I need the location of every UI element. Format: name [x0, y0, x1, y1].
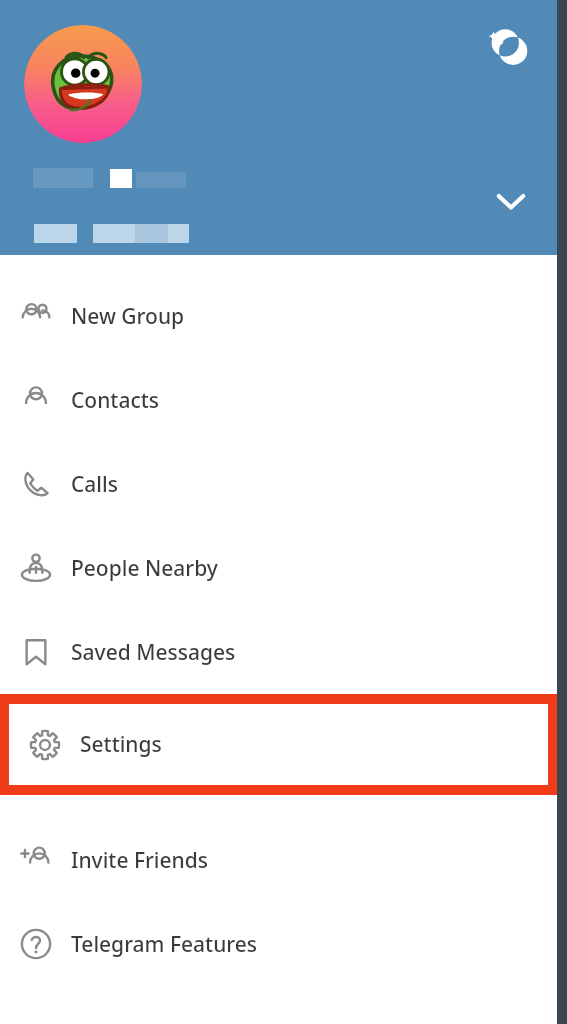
staticText: Invite Friends [71, 846, 208, 875]
staticText: Saved Messages [71, 638, 236, 667]
staticText: Contacts [71, 386, 159, 415]
staticText: People Nearby [71, 554, 218, 583]
button[interactable]: Expand accounts [485, 175, 537, 227]
staticText: New Group [71, 302, 185, 331]
staticText: Settings [80, 730, 162, 759]
button[interactable]: Saved Messages [0, 610, 557, 694]
button[interactable]: Profile photo [24, 25, 142, 143]
button[interactable]: New Group [0, 274, 557, 358]
button[interactable]: People Nearby [0, 526, 557, 610]
button[interactable]: Contacts [0, 358, 557, 442]
button[interactable]: Calls [0, 442, 557, 526]
button[interactable]: Toggle night mode [481, 22, 537, 78]
button[interactable]: Invite Friends [0, 818, 557, 902]
staticText: Telegram Features [71, 930, 258, 959]
button[interactable]: Settings [9, 704, 548, 785]
staticText: Calls [71, 470, 118, 499]
button[interactable]: Telegram Features [0, 902, 557, 986]
